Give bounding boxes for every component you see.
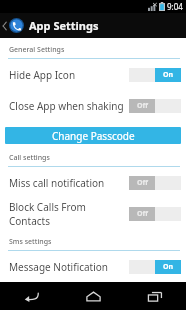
button[interactable]: Home — [62, 282, 124, 310]
button[interactable]: Message Notification — [0, 251, 186, 282]
button[interactable]: Recent apps — [124, 282, 186, 310]
button[interactable]: Change Passcode — [5, 127, 181, 144]
staticText: General Settings — [9, 45, 65, 55]
button[interactable]: Block Calls From Contacts — [0, 198, 186, 229]
staticText: Off — [137, 209, 148, 219]
button[interactable]: Off — [129, 207, 181, 221]
staticText: Off — [137, 101, 148, 111]
staticText: Close App when shaking — [9, 99, 129, 113]
button[interactable]: On — [129, 260, 181, 274]
staticText: Sms settings — [9, 237, 52, 247]
button[interactable]: Back — [0, 282, 62, 310]
button[interactable]: On — [129, 68, 181, 82]
button[interactable]: Close App when shaking — [0, 90, 186, 121]
staticText: Miss call notification — [9, 176, 129, 190]
button[interactable]: Hide App Icon — [0, 59, 186, 90]
button[interactable]: Navigate up — [0, 18, 107, 33]
staticText: Off — [137, 178, 148, 188]
staticText: Message Notification — [9, 260, 129, 274]
staticText: Hide App Icon — [9, 68, 129, 82]
button[interactable]: Off — [129, 99, 181, 113]
button[interactable]: Miss call notification — [0, 167, 186, 198]
button[interactable]: Off — [129, 176, 181, 190]
staticText: On — [163, 70, 174, 80]
staticText: Block Calls From Contacts — [9, 200, 129, 228]
staticText: Change Passcode — [52, 129, 135, 143]
staticText: On — [163, 262, 174, 272]
staticText: 9:04 — [167, 1, 183, 12]
staticText: App Settings — [29, 18, 99, 33]
staticText: Call settings — [9, 153, 50, 163]
